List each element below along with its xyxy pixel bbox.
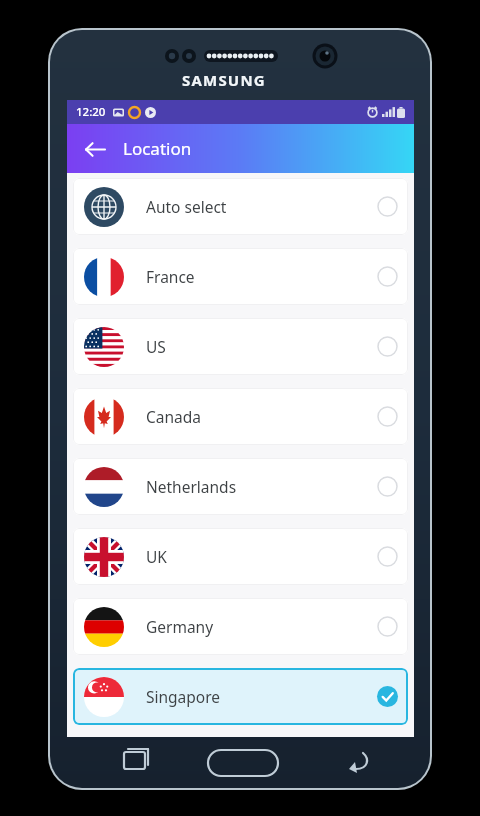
- staticText: Location: [123, 137, 192, 160]
- staticText: US: [146, 336, 166, 357]
- staticText: Auto select: [146, 196, 227, 217]
- button[interactable]: Netherlands: [73, 458, 408, 515]
- button[interactable]: Auto select: [73, 178, 408, 235]
- staticText: Germany: [146, 616, 214, 637]
- button[interactable]: UK: [73, 528, 408, 585]
- staticText: UK: [146, 546, 167, 567]
- staticText: Singapore: [146, 686, 221, 707]
- staticText: SAMSUNG: [182, 70, 266, 90]
- staticText: 12:20: [76, 104, 106, 120]
- button[interactable]: Singapore: [73, 668, 408, 725]
- staticText: Canada: [146, 406, 201, 427]
- button[interactable]: Canada: [73, 388, 408, 445]
- staticText: Netherlands: [146, 476, 237, 497]
- staticText: France: [146, 266, 195, 287]
- button[interactable]: Back: [75, 129, 115, 169]
- button[interactable]: US: [73, 318, 408, 375]
- button[interactable]: Germany: [73, 598, 408, 655]
- button[interactable]: France: [73, 248, 408, 305]
